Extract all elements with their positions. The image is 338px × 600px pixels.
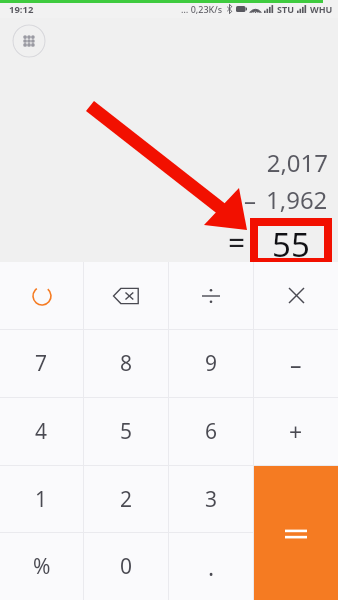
button[interactable]: .	[169, 533, 253, 600]
staticText: 1	[35, 485, 48, 514]
staticText: … 0,23K/s	[181, 3, 223, 15]
staticText: %	[33, 552, 51, 581]
staticText: WHU	[310, 3, 333, 15]
button[interactable]: –	[254, 330, 338, 397]
button[interactable]: 5	[84, 398, 168, 465]
staticText: 3	[205, 485, 218, 514]
button[interactable]: +	[254, 398, 338, 465]
staticText: +	[289, 416, 303, 447]
button[interactable]: Clear	[0, 262, 83, 329]
button[interactable]: Apps	[12, 24, 46, 58]
button[interactable]: Multiply	[254, 262, 338, 329]
button[interactable]: 3	[169, 466, 253, 532]
button[interactable]: 1	[0, 466, 83, 532]
staticText: 2	[120, 485, 133, 514]
staticText: –	[290, 348, 302, 379]
button[interactable]: 2	[84, 466, 168, 532]
button[interactable]: 0	[84, 533, 168, 600]
button[interactable]: 7	[0, 330, 83, 397]
staticText: .	[208, 551, 215, 582]
button[interactable]: %	[0, 533, 83, 600]
staticText: 1,962	[266, 183, 328, 216]
staticText: 19:12	[9, 3, 34, 16]
button[interactable]: 4	[0, 398, 83, 465]
button[interactable]: 8	[84, 330, 168, 397]
staticText: 5	[120, 417, 133, 446]
staticText: 0	[120, 552, 133, 581]
button[interactable]: 9	[169, 330, 253, 397]
staticText: STU	[277, 3, 294, 15]
button[interactable]: Divide	[169, 262, 253, 329]
staticText: 4	[35, 417, 48, 446]
button[interactable]: Backspace	[84, 262, 168, 329]
button[interactable]: Equals	[254, 466, 338, 600]
staticText: 55	[272, 222, 310, 262]
staticText: –	[244, 183, 256, 216]
staticText: 8	[120, 349, 133, 378]
staticText: 7	[35, 349, 48, 378]
staticText: =	[228, 222, 246, 262]
staticText: 6	[205, 417, 218, 446]
staticText: 2,017	[266, 146, 328, 179]
button[interactable]: 6	[169, 398, 253, 465]
staticText: 9	[205, 349, 218, 378]
